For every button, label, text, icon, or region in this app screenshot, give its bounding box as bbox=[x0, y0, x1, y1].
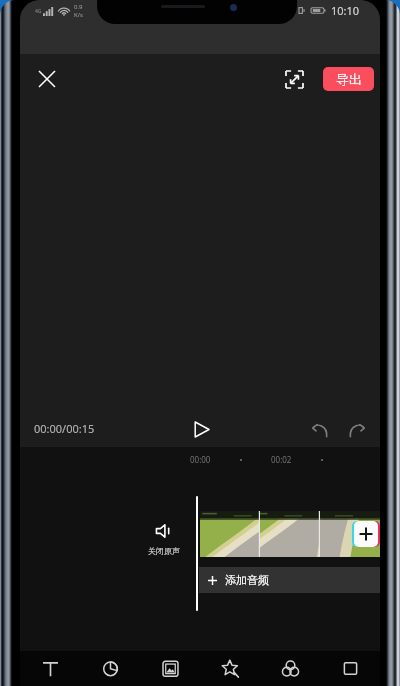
staticText: 00:02 bbox=[271, 454, 292, 465]
button[interactable]: image bbox=[140, 651, 200, 686]
staticText: 添加音频 bbox=[225, 573, 269, 587]
button[interactable]: 添加音频 bbox=[199, 567, 380, 593]
staticText: 00:00 bbox=[190, 454, 211, 465]
button[interactable]: Play bbox=[186, 414, 216, 444]
staticText: K/s bbox=[74, 11, 83, 19]
button[interactable]: Add clip bbox=[352, 521, 380, 547]
staticText: 4G bbox=[35, 8, 42, 15]
button[interactable]: Undo bbox=[304, 414, 334, 444]
button[interactable]: text bbox=[20, 651, 80, 686]
button[interactable]: filter bbox=[80, 651, 140, 686]
button[interactable]: 关闭原声 bbox=[148, 524, 180, 556]
staticText: 10:10 bbox=[331, 3, 360, 18]
button[interactable]: ratio bbox=[320, 651, 380, 686]
button[interactable]: 导出 bbox=[323, 67, 374, 91]
button[interactable]: Fullscreen bbox=[277, 62, 311, 96]
button[interactable]: Redo bbox=[342, 414, 372, 444]
button[interactable]: Close bbox=[28, 60, 66, 98]
staticText: 0.9 bbox=[74, 3, 83, 11]
button[interactable]: sticker bbox=[200, 651, 260, 686]
staticText: 关闭原声 bbox=[148, 546, 180, 556]
staticText: 00:00/00:15 bbox=[34, 421, 95, 436]
button[interactable]: effect bbox=[260, 651, 320, 686]
staticText: 导出 bbox=[336, 71, 362, 87]
